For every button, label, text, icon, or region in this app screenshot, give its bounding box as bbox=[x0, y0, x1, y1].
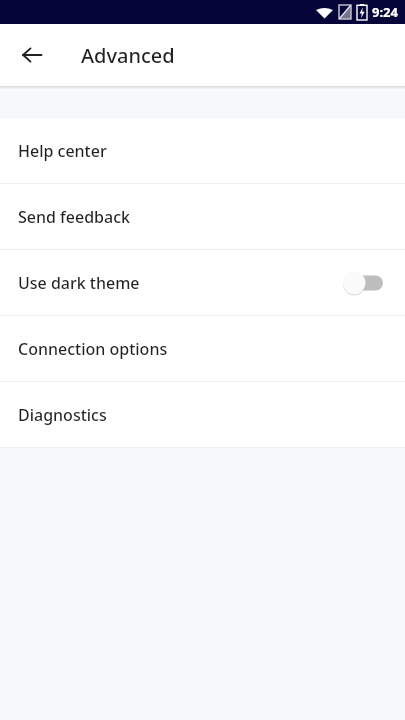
button[interactable]: Help center bbox=[0, 118, 405, 183]
button[interactable]: Send feedback bbox=[0, 184, 405, 249]
staticText: Advanced bbox=[81, 42, 175, 69]
button[interactable]: Diagnostics bbox=[0, 382, 405, 447]
staticText: Send feedback bbox=[18, 206, 130, 228]
button[interactable]: Use dark theme bbox=[0, 250, 405, 315]
button[interactable]: Back bbox=[10, 33, 54, 77]
staticText: Use dark theme bbox=[18, 272, 140, 294]
staticText: Diagnostics bbox=[18, 404, 107, 426]
staticText: 9:24 bbox=[372, 3, 398, 21]
button[interactable]: Connection options bbox=[0, 316, 405, 381]
staticText: Connection options bbox=[18, 338, 168, 360]
staticText: Help center bbox=[18, 140, 107, 162]
